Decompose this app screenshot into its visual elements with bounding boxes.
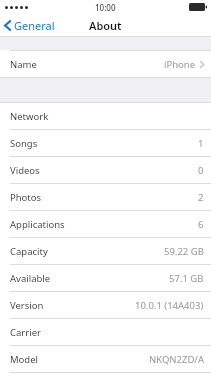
button[interactable]: Capacity bbox=[0, 238, 211, 264]
staticText: Carrier bbox=[10, 326, 41, 339]
button[interactable]: General bbox=[0, 14, 63, 36]
staticText: Model bbox=[10, 353, 39, 366]
button[interactable]: Applications bbox=[0, 211, 211, 237]
staticText: About bbox=[89, 18, 122, 33]
staticText: 1 bbox=[198, 137, 204, 150]
staticText: NKQN2ZD/A bbox=[149, 353, 204, 366]
staticText: 0 bbox=[198, 164, 204, 177]
staticText: Applications bbox=[10, 218, 65, 231]
staticText: Name bbox=[10, 58, 37, 71]
staticText: Available bbox=[10, 272, 51, 285]
staticText: 59.22 GB bbox=[164, 245, 204, 258]
button[interactable]: Songs bbox=[0, 130, 211, 156]
button[interactable]: Version bbox=[0, 292, 211, 318]
button[interactable]: Name bbox=[0, 51, 211, 77]
other: Open Name bbox=[200, 61, 204, 68]
staticText: Capacity bbox=[10, 245, 48, 258]
button[interactable]: Network bbox=[0, 103, 211, 129]
staticText: 10:00 bbox=[95, 2, 116, 13]
staticText: Version bbox=[10, 299, 44, 312]
staticText: Photos bbox=[10, 191, 42, 204]
button[interactable]: Videos bbox=[0, 157, 211, 183]
staticText: 2 bbox=[198, 191, 204, 204]
button[interactable]: Model bbox=[0, 346, 211, 372]
staticText: 57.1 GB bbox=[169, 272, 204, 285]
staticText: General bbox=[14, 18, 55, 32]
staticText: 6 bbox=[198, 218, 204, 231]
staticText: 10.0.1 (14A403) bbox=[135, 299, 204, 312]
staticText: iPhone bbox=[164, 58, 196, 71]
button[interactable]: Photos bbox=[0, 184, 211, 210]
staticText: Videos bbox=[10, 164, 40, 177]
staticText: Network bbox=[10, 110, 49, 123]
button[interactable]: Available bbox=[0, 265, 211, 291]
staticText: Songs bbox=[10, 137, 38, 150]
button[interactable]: Carrier bbox=[0, 319, 211, 345]
